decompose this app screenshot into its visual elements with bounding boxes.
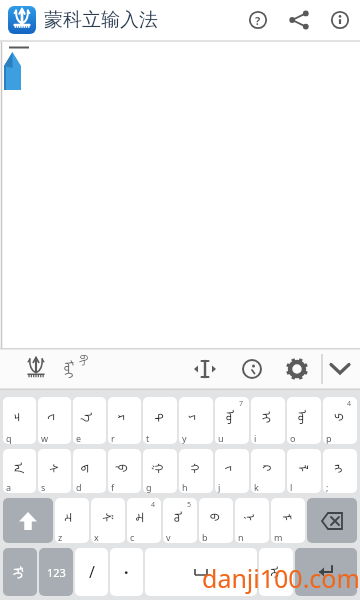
button[interactable]: ᠤ bbox=[163, 498, 197, 543]
staticText: ᠤ bbox=[169, 511, 190, 523]
staticText: ᠵ bbox=[221, 465, 242, 471]
staticText: danji100.com bbox=[202, 561, 360, 595]
staticText: g bbox=[146, 481, 152, 493]
staticText: ᠺ bbox=[258, 465, 279, 472]
button[interactable]: ᠳ bbox=[73, 449, 106, 493]
staticText: c bbox=[130, 531, 135, 543]
button[interactable]: ᠦ bbox=[215, 397, 249, 444]
staticText: ᠡ bbox=[79, 412, 100, 422]
button[interactable] bbox=[328, 8, 352, 32]
staticText: x bbox=[94, 531, 99, 543]
staticText: · bbox=[124, 561, 129, 583]
button[interactable] bbox=[276, 348, 310, 390]
button[interactable]: ᠭ bbox=[143, 449, 177, 493]
staticText: ᠮᠣᠢ bbox=[60, 360, 81, 379]
button[interactable]: ᠯ bbox=[287, 449, 321, 493]
staticText: s bbox=[41, 481, 46, 493]
staticText: m bbox=[274, 531, 283, 543]
staticText: ᠱ bbox=[97, 512, 118, 522]
button[interactable]: ᠶ bbox=[179, 397, 213, 444]
button[interactable]: / bbox=[75, 548, 108, 596]
staticText: ᠼ bbox=[134, 512, 155, 523]
staticText: b bbox=[202, 531, 208, 543]
button[interactable]: ᠠ bbox=[3, 449, 36, 493]
button[interactable]: ᠮᠢ bbox=[3, 548, 37, 596]
staticText: p bbox=[326, 432, 332, 444]
staticText: ᠽ bbox=[61, 512, 82, 522]
button[interactable] bbox=[0, 348, 184, 390]
button[interactable]: ᠹ bbox=[108, 449, 141, 493]
button[interactable]: ᠺ bbox=[251, 449, 285, 493]
staticText: ᠶ bbox=[185, 414, 206, 420]
button[interactable] bbox=[184, 348, 218, 390]
staticText: r bbox=[111, 432, 115, 444]
button[interactable]: ᠴ bbox=[3, 397, 36, 444]
staticText: e bbox=[76, 432, 82, 444]
button[interactable]: ᠩ bbox=[323, 449, 357, 493]
staticText: ᠲ bbox=[150, 413, 171, 422]
button[interactable]: ᠼ bbox=[127, 498, 161, 543]
staticText: ᠪ bbox=[206, 513, 227, 522]
button[interactable]: 123 bbox=[39, 548, 73, 596]
staticText: y bbox=[182, 432, 187, 444]
button[interactable] bbox=[8, 6, 36, 34]
staticText: k bbox=[254, 481, 259, 493]
staticText: l bbox=[290, 481, 293, 493]
staticText: ᠬ bbox=[186, 463, 207, 474]
button[interactable]: ᢈ bbox=[259, 548, 293, 596]
button[interactable]: ᠥ bbox=[287, 397, 321, 444]
staticText: ᠠ bbox=[9, 462, 30, 474]
staticText: 7 bbox=[239, 399, 244, 409]
staticText: ᠸ bbox=[44, 413, 65, 421]
staticText: ᠢ bbox=[257, 411, 278, 423]
button[interactable] bbox=[287, 8, 311, 32]
staticText: ᠩ bbox=[330, 464, 351, 473]
button[interactable]: ᠨ bbox=[235, 498, 269, 543]
button[interactable] bbox=[324, 348, 360, 390]
button[interactable]: ᠰ bbox=[38, 449, 71, 493]
staticText: a bbox=[6, 481, 12, 493]
button[interactable]: ? bbox=[246, 8, 270, 32]
staticText: ᠮ bbox=[277, 513, 298, 521]
button[interactable]: · bbox=[110, 548, 143, 596]
staticText: ᠹ bbox=[114, 464, 135, 473]
button[interactable]: ᠮ bbox=[271, 498, 305, 543]
staticText: / bbox=[89, 561, 95, 583]
staticText: z bbox=[58, 531, 63, 543]
button[interactable]: ᠡ bbox=[73, 397, 106, 444]
staticText: ᢈ bbox=[265, 566, 286, 578]
button[interactable] bbox=[295, 548, 357, 596]
button[interactable]: ᠱ bbox=[91, 498, 125, 543]
staticText: f bbox=[111, 481, 115, 493]
button[interactable]: ᠪ bbox=[199, 498, 233, 543]
button[interactable] bbox=[3, 498, 53, 543]
staticText: ᠨ bbox=[241, 513, 262, 521]
button[interactable]: ᠢ bbox=[251, 397, 285, 444]
button[interactable] bbox=[145, 548, 257, 596]
staticText: 蒙科立输入法 bbox=[44, 8, 158, 32]
button[interactable]: ᠸ bbox=[38, 397, 71, 444]
staticText: o bbox=[290, 432, 296, 444]
staticText: ᠷ bbox=[114, 414, 135, 420]
button[interactable]: ᠷ bbox=[108, 397, 141, 444]
button[interactable] bbox=[230, 348, 264, 390]
staticText: 4 bbox=[347, 399, 352, 409]
button[interactable]: ᠵ bbox=[215, 449, 249, 493]
button[interactable] bbox=[307, 498, 357, 543]
staticText: h bbox=[182, 481, 188, 493]
staticText: v bbox=[166, 531, 171, 543]
staticText: ᠥ bbox=[294, 410, 315, 425]
button[interactable]: ᠽ bbox=[55, 498, 89, 543]
button[interactable]: ᠲ bbox=[143, 397, 177, 444]
staticText: 4 bbox=[151, 500, 156, 510]
button[interactable]: ᠬ bbox=[179, 449, 213, 493]
button[interactable]: ᠫ bbox=[323, 397, 357, 444]
staticText: ᠳ bbox=[79, 464, 100, 473]
staticText: ᠭ bbox=[150, 463, 171, 474]
staticText: t bbox=[146, 432, 150, 444]
staticText: ᠴ bbox=[9, 412, 30, 422]
staticText: ; bbox=[326, 481, 329, 493]
staticText: d bbox=[76, 481, 82, 493]
staticText: 123 bbox=[47, 565, 66, 580]
staticText: ᠦ bbox=[222, 410, 243, 425]
